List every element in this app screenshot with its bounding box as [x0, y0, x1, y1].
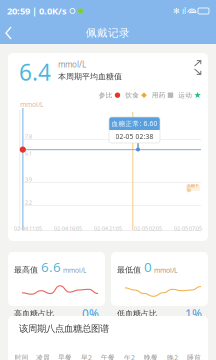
- staticText: 02-05 07:05: [174, 225, 202, 232]
- staticText: 凌晨: [36, 353, 50, 360]
- staticText: 运动: [178, 91, 192, 99]
- staticText: 02-05 02:38: [115, 132, 153, 141]
- staticText: 1%: [185, 306, 202, 322]
- staticText: 20:59 | 0.0K/s: [7, 5, 67, 17]
- staticText: 6.4: [19, 57, 51, 87]
- staticText: 饮食: [125, 91, 139, 99]
- staticText: 0%: [82, 306, 99, 322]
- staticText: 本周期平均血糖值: [58, 72, 122, 81]
- button[interactable]: Fullscreen: [191, 57, 205, 78]
- staticText: 02-04 21:05: [94, 225, 122, 232]
- staticText: 用药: [152, 91, 166, 99]
- staticText: 7.8: [25, 133, 32, 140]
- button[interactable]: Back: [0, 23, 22, 43]
- staticText: 02-04 11:05: [14, 225, 42, 232]
- staticText: 3.9: [25, 176, 32, 183]
- staticText: 0: [144, 258, 152, 276]
- staticText: 午2: [124, 353, 135, 360]
- staticText: 02-04 16:05: [54, 225, 82, 232]
- staticText: 最高值: [14, 265, 38, 275]
- staticText: 6.6: [41, 258, 61, 276]
- staticText: ✻: [173, 6, 180, 16]
- staticText: 血糖下限: [187, 183, 199, 193]
- staticText: 02-05 02:05: [134, 225, 162, 232]
- staticText: mmol/L: [154, 266, 177, 275]
- staticText: 最低值: [117, 265, 141, 275]
- staticText: 早2: [81, 353, 92, 360]
- staticText: 低血糖占比: [117, 309, 157, 319]
- staticText: 晚餐: [144, 353, 158, 360]
- staticText: 睡前: [187, 353, 201, 360]
- staticText: 血糖正常: 6.60: [111, 119, 157, 128]
- staticText: mmol/L: [58, 59, 86, 70]
- staticText: mmol/L: [63, 266, 86, 275]
- staticText: 佩戴记录: [86, 26, 130, 39]
- staticText: 午餐: [101, 353, 115, 360]
- staticText: 晚2: [167, 353, 178, 360]
- staticText: ıl: [182, 6, 186, 16]
- staticText: 高血糖占比: [14, 309, 54, 319]
- staticText: mmol/L: [20, 100, 43, 109]
- staticText: 时间: [15, 353, 29, 360]
- staticText: 6.1: [25, 150, 32, 157]
- staticText: 2.2: [25, 199, 32, 206]
- staticText: 早餐: [58, 353, 72, 360]
- staticText: 该周期八点血糖总图谱: [19, 323, 109, 334]
- staticText: 参比: [99, 91, 113, 99]
